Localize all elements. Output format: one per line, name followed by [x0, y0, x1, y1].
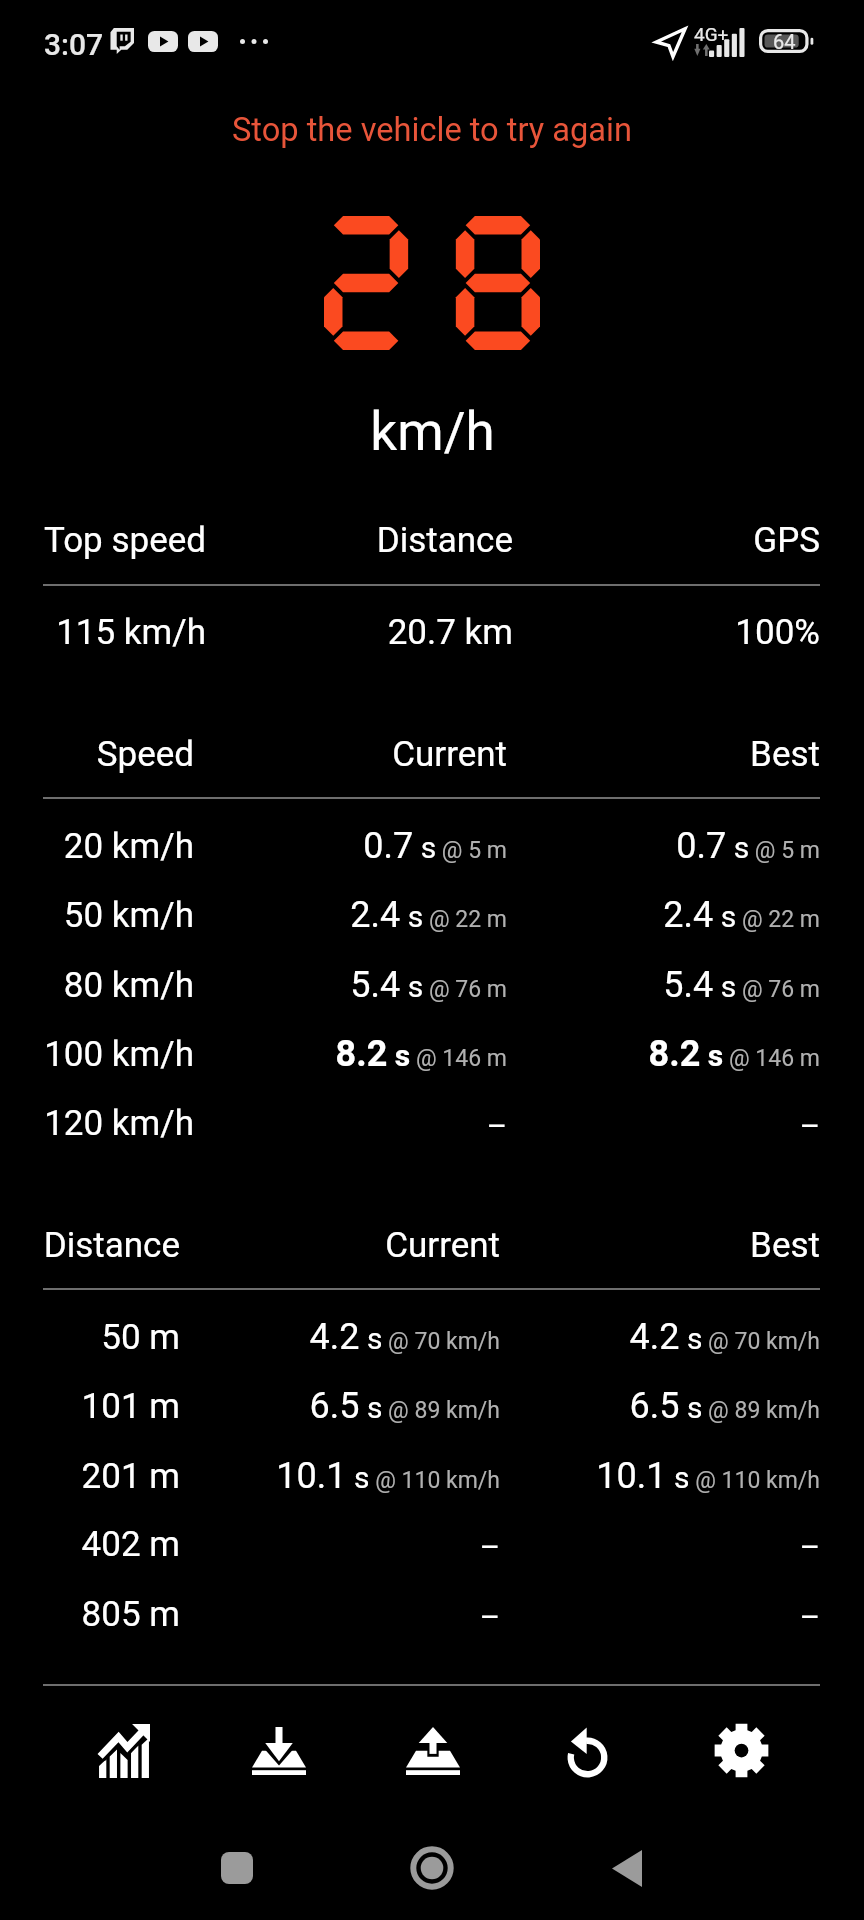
staticText: –	[500, 1599, 820, 1635]
staticText: 50 m	[101, 1317, 180, 1358]
staticText: 4.2 s @ 70 km/h	[500, 1316, 820, 1358]
staticText: 120 km/h	[44, 1103, 194, 1144]
staticText: Stop the vehicle to try again	[232, 111, 632, 149]
button[interactable]: Export	[356, 1700, 510, 1801]
staticText: 5.4 s @ 76 m	[194, 964, 507, 1006]
staticText: 115 km/h	[56, 612, 206, 653]
staticText: Current	[180, 1225, 500, 1266]
staticText: 0.7 s @ 5 m	[194, 825, 507, 867]
staticText: 10.1 s @ 110 km/h	[500, 1455, 820, 1497]
staticText: Best	[507, 734, 820, 775]
staticText: 2.4 s @ 22 m	[194, 894, 507, 936]
staticText: Top speed	[43, 520, 206, 561]
staticText: –	[180, 1599, 500, 1635]
staticText: Distance	[43, 1225, 180, 1266]
staticText: GPS	[513, 520, 820, 561]
button[interactable]: Settings	[664, 1700, 818, 1801]
staticText: 201 m	[81, 1456, 180, 1497]
staticText: 8.2 s @ 146 m	[507, 1033, 820, 1075]
staticText: 5.4 s @ 76 m	[507, 964, 820, 1006]
staticText: 20.7 km	[206, 612, 513, 653]
staticText: 101 m	[81, 1386, 180, 1427]
staticText: 0.7 s @ 5 m	[507, 825, 820, 867]
staticText: 402 m	[81, 1524, 180, 1565]
button[interactable]: Recents	[205, 1836, 269, 1900]
staticText: 6.5 s @ 89 km/h	[500, 1385, 820, 1427]
staticText: 50 km/h	[63, 895, 194, 936]
staticText: 3:07	[44, 27, 104, 62]
staticText: –	[194, 1108, 507, 1144]
staticText: 2.4 s @ 22 m	[507, 894, 820, 936]
staticText: 64	[773, 30, 796, 53]
staticText: –	[507, 1108, 820, 1144]
staticText: 100 km/h	[44, 1034, 194, 1075]
staticText: Speed	[96, 734, 194, 775]
staticText: Best	[500, 1225, 820, 1266]
staticText: km/h	[370, 401, 495, 463]
button[interactable]: Home	[400, 1836, 464, 1900]
staticText: Distance	[206, 520, 513, 561]
staticText: –	[180, 1529, 500, 1565]
staticText: 805 m	[81, 1594, 180, 1635]
staticText: Current	[194, 734, 507, 775]
button[interactable]: Statistics	[46, 1700, 201, 1801]
staticText: 10.1 s @ 110 km/h	[180, 1455, 500, 1497]
button[interactable]: Import	[201, 1700, 356, 1801]
staticText: 6.5 s @ 89 km/h	[180, 1385, 500, 1427]
staticText: 80 km/h	[63, 965, 194, 1006]
staticText: –	[500, 1529, 820, 1565]
button[interactable]: Back	[595, 1836, 659, 1900]
staticText: 100%	[513, 612, 820, 653]
staticText: 4.2 s @ 70 km/h	[180, 1316, 500, 1358]
staticText: 20 km/h	[63, 826, 194, 867]
staticText: 4G+	[694, 23, 729, 45]
button[interactable]: Reset	[510, 1700, 664, 1801]
staticText: 8.2 s @ 146 m	[194, 1033, 507, 1075]
